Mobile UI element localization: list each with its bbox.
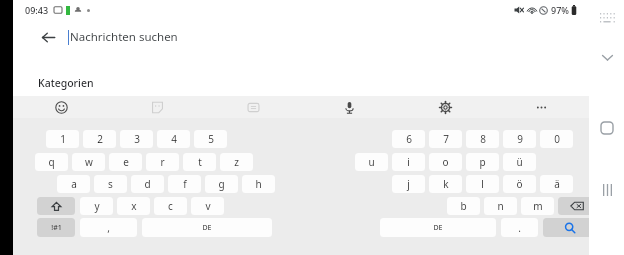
button[interactable]: Home <box>594 115 620 141</box>
staticText: 5 <box>208 132 214 146</box>
staticText: d <box>144 177 151 191</box>
staticText: 3 <box>134 132 140 146</box>
button[interactable]: Hide keyboard <box>595 6 619 30</box>
button[interactable]: 7 <box>429 130 462 148</box>
staticText: w <box>85 155 93 169</box>
button[interactable]: , <box>80 218 137 237</box>
button[interactable]: x <box>117 197 150 215</box>
button[interactable]: g <box>205 175 238 193</box>
staticText: 09:43 <box>25 4 49 16</box>
button[interactable]: 6 <box>392 130 425 148</box>
staticText: p <box>479 155 486 169</box>
button[interactable]: n <box>484 197 517 215</box>
button[interactable]: t <box>183 153 216 171</box>
button[interactable]: j <box>392 175 425 193</box>
button[interactable]: d <box>131 175 164 193</box>
button[interactable]: ä <box>540 175 573 193</box>
staticText: ü <box>516 155 523 169</box>
staticText: z <box>234 155 239 169</box>
button[interactable]: z <box>220 153 253 171</box>
button[interactable]: Search <box>543 218 596 237</box>
button[interactable]: Back <box>25 20 577 54</box>
staticText: 2 <box>97 132 103 146</box>
staticText: v <box>205 199 211 213</box>
button[interactable]: Symbols <box>37 218 75 237</box>
button[interactable]: 4 <box>157 130 190 148</box>
button[interactable]: 8 <box>466 130 499 148</box>
staticText: i <box>407 155 410 169</box>
button[interactable]: m <box>521 197 554 215</box>
button[interactable]: Voice input <box>301 96 397 118</box>
button[interactable]: Back <box>37 26 59 48</box>
button[interactable]: o <box>429 153 462 171</box>
button[interactable]: l <box>466 175 499 193</box>
staticText: o <box>442 155 449 169</box>
staticText: t <box>198 155 202 169</box>
staticText: Kategorien <box>38 76 94 90</box>
staticText: 7 <box>443 132 449 146</box>
staticText: !#1 <box>51 223 62 233</box>
staticText: k <box>443 177 449 191</box>
staticText: . <box>518 221 521 235</box>
staticText: 0 <box>554 132 560 146</box>
button[interactable]: Back <box>594 44 620 70</box>
button[interactable]: DE <box>380 218 496 237</box>
staticText: 6 <box>406 132 412 146</box>
staticText: n <box>497 199 504 213</box>
button[interactable]: Shift <box>37 197 75 215</box>
button[interactable]: 3 <box>120 130 153 148</box>
button[interactable]: q <box>35 153 68 171</box>
button[interactable]: ü <box>503 153 536 171</box>
staticText: 1 <box>60 132 66 146</box>
button[interactable]: a <box>57 175 90 193</box>
button[interactable]: GIF <box>205 96 301 118</box>
button[interactable]: p <box>466 153 499 171</box>
button[interactable]: ö <box>503 175 536 193</box>
button[interactable]: w <box>72 153 105 171</box>
button[interactable]: 0 <box>540 130 573 148</box>
button[interactable]: Backspace <box>558 197 596 215</box>
staticText: j <box>407 177 410 191</box>
button[interactable]: k <box>429 175 462 193</box>
button[interactable]: . <box>501 218 538 237</box>
button[interactable]: DE <box>142 218 272 237</box>
staticText: f <box>183 177 187 191</box>
button[interactable]: 1 <box>46 130 79 148</box>
button[interactable]: Stickers <box>109 96 205 118</box>
staticText: h <box>255 177 262 191</box>
staticText: 4 <box>171 132 177 146</box>
staticText: , <box>107 221 110 235</box>
button[interactable]: 9 <box>503 130 536 148</box>
staticText: 8 <box>480 132 486 146</box>
staticText: u <box>368 155 375 169</box>
button[interactable]: e <box>109 153 142 171</box>
button[interactable]: s <box>94 175 127 193</box>
staticText: y <box>94 199 100 213</box>
button[interactable]: i <box>392 153 425 171</box>
staticText: 9 <box>517 132 523 146</box>
button[interactable]: r <box>146 153 179 171</box>
button[interactable]: 2 <box>83 130 116 148</box>
button[interactable]: v <box>191 197 224 215</box>
button[interactable]: f <box>168 175 201 193</box>
button[interactable]: 5 <box>194 130 227 148</box>
button[interactable]: b <box>447 197 480 215</box>
staticText: q <box>48 155 55 169</box>
staticText: r <box>160 155 165 169</box>
button[interactable]: Settings <box>397 96 493 118</box>
staticText: c <box>168 199 173 213</box>
button[interactable]: Recent apps <box>594 177 620 203</box>
staticText: m <box>533 199 543 213</box>
staticText: s <box>108 177 113 191</box>
staticText: Nachrichten suchen <box>70 29 178 45</box>
staticText: ä <box>554 177 560 191</box>
staticText: DE <box>202 223 212 233</box>
button[interactable]: y <box>80 197 113 215</box>
button[interactable]: c <box>154 197 187 215</box>
button[interactable]: Emoji <box>13 96 109 118</box>
button[interactable]: More options <box>493 96 589 118</box>
button[interactable]: h <box>242 175 275 193</box>
staticText: a <box>71 177 77 191</box>
button[interactable]: u <box>355 153 388 171</box>
staticText: l <box>481 177 484 191</box>
